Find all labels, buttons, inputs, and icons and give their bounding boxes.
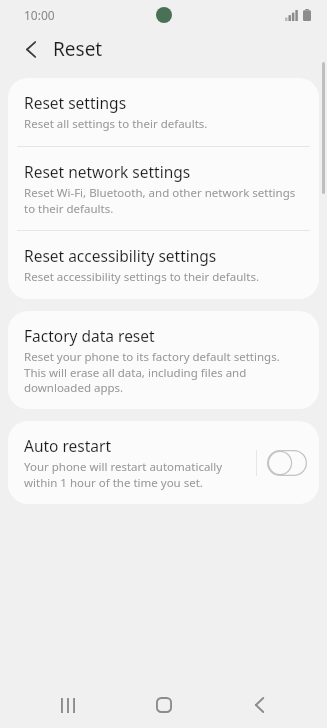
button[interactable]: Factory data reset — [8, 311, 319, 409]
button[interactable]: Home — [137, 684, 191, 726]
staticText: Reset all settings to their defaults. — [24, 116, 208, 132]
staticText: Reset your phone to its factory default … — [24, 349, 303, 395]
staticText: Reset accessibility settings to their de… — [24, 269, 259, 285]
staticText: Factory data reset — [24, 325, 155, 346]
button[interactable]: Back — [16, 34, 46, 64]
staticText: Reset accessibility settings — [24, 245, 217, 266]
button[interactable]: Reset network settings — [8, 147, 319, 230]
staticText: Reset settings — [24, 92, 127, 113]
staticText: Reset Wi-Fi, Bluetooth, and other networ… — [24, 185, 303, 216]
button[interactable]: Reset settings — [8, 78, 319, 146]
button[interactable]: Auto restart — [267, 450, 307, 476]
staticText: Your phone will restart automatically wi… — [24, 459, 248, 490]
button[interactable]: Back — [232, 684, 286, 726]
button[interactable]: Reset accessibility settings — [8, 231, 319, 299]
staticText: 10:00 — [24, 7, 55, 23]
staticText: Auto restart — [24, 435, 112, 456]
staticText: Reset network settings — [24, 161, 191, 182]
staticText: Reset — [53, 36, 103, 62]
button[interactable]: Auto restart — [8, 421, 319, 504]
button[interactable]: Recent apps — [41, 684, 95, 726]
